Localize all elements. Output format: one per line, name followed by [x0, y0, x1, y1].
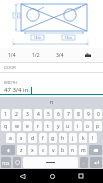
- staticText: j: [72, 135, 74, 142]
- button[interactable]: m: [79, 145, 87, 155]
- button[interactable]: d: [28, 133, 37, 143]
- button[interactable]: 9: [84, 109, 92, 119]
- staticText: u: [66, 123, 70, 130]
- staticText: DOOR: [4, 65, 16, 70]
- button[interactable]: n: [69, 145, 77, 155]
- button[interactable]: g: [49, 133, 57, 143]
- button[interactable]: 3/4: [48, 48, 72, 62]
- staticText: ?123: [2, 161, 10, 165]
- button[interactable]: backspace: [89, 145, 102, 155]
- staticText: 18 in.: [65, 36, 73, 40]
- button[interactable]: b: [59, 145, 67, 155]
- button[interactable]: q: [1, 121, 10, 131]
- button[interactable]: k: [79, 133, 87, 143]
- staticText: 1/4: [8, 52, 16, 59]
- button[interactable]: 1: [1, 109, 10, 119]
- button[interactable]: .: [80, 157, 88, 168]
- staticText: 4: [37, 111, 40, 118]
- button[interactable]: emoji: [13, 157, 21, 168]
- staticText: .: [83, 159, 85, 166]
- staticText: 0: [97, 111, 100, 118]
- button[interactable]: Space: [23, 157, 78, 168]
- staticText: 47 3/4 in.: [4, 86, 30, 94]
- button[interactable]: Units: [72, 48, 103, 62]
- button[interactable]: Home: [44, 169, 60, 183]
- staticText: b: [61, 147, 65, 154]
- staticText: 7: [67, 111, 70, 118]
- staticText: 8: [77, 111, 80, 118]
- staticText: f: [42, 135, 44, 142]
- button[interactable]: 8: [74, 109, 82, 119]
- button[interactable]: i: [74, 121, 82, 131]
- button[interactable]: ?123: [1, 157, 11, 168]
- staticText: n: [50, 99, 54, 106]
- staticText: g: [51, 135, 55, 142]
- staticText: 1/2: [32, 52, 40, 59]
- staticText: 18 in.: [34, 36, 42, 40]
- button[interactable]: 2: [12, 109, 21, 119]
- button[interactable]: y: [54, 121, 62, 131]
- staticText: r: [37, 123, 40, 130]
- staticText: WIDTH: [4, 80, 18, 85]
- button[interactable]: 0: [94, 109, 102, 119]
- button[interactable]: c: [39, 145, 47, 155]
- button[interactable]: 4: [34, 109, 42, 119]
- button[interactable]: 6: [54, 109, 62, 119]
- button[interactable]: 7: [64, 109, 72, 119]
- staticText: l: [92, 135, 94, 142]
- staticText: d: [31, 135, 35, 142]
- staticText: 12: [15, 14, 19, 18]
- button[interactable]: v: [49, 145, 57, 155]
- button[interactable]: Recents: [73, 169, 89, 183]
- staticText: 3: [26, 111, 29, 118]
- button[interactable]: f: [39, 133, 47, 143]
- button[interactable]: p: [94, 121, 102, 131]
- button[interactable]: r: [34, 121, 42, 131]
- staticText: 1: [4, 111, 7, 118]
- staticText: a: [9, 135, 12, 142]
- button[interactable]: e: [23, 121, 32, 131]
- button[interactable]: s: [17, 133, 26, 143]
- button[interactable]: x: [28, 145, 37, 155]
- staticText: q: [4, 123, 8, 130]
- button[interactable]: o: [84, 121, 92, 131]
- staticText: h: [61, 135, 65, 142]
- staticText: t: [47, 123, 49, 130]
- staticText: o: [86, 123, 90, 130]
- button[interactable]: w: [12, 121, 21, 131]
- button[interactable]: Back: [14, 169, 30, 183]
- staticText: y: [57, 123, 60, 130]
- staticText: n: [71, 147, 75, 154]
- staticText: e: [26, 123, 29, 130]
- button[interactable]: enter: [90, 157, 102, 168]
- staticText: x: [31, 147, 34, 154]
- staticText: 3/4: [56, 52, 64, 59]
- staticText: s: [20, 135, 23, 142]
- staticText: 5: [47, 111, 50, 118]
- staticText: i: [77, 123, 79, 130]
- staticText: 9: [87, 111, 90, 118]
- button[interactable]: h: [59, 133, 67, 143]
- button[interactable]: 1/2: [24, 48, 48, 62]
- staticText: z: [20, 147, 23, 154]
- button[interactable]: u: [64, 121, 72, 131]
- staticText: p: [96, 123, 100, 130]
- button[interactable]: 3: [23, 109, 32, 119]
- staticText: c: [42, 147, 45, 154]
- button[interactable]: 5: [44, 109, 52, 119]
- button[interactable]: shift: [1, 145, 15, 155]
- staticText: 2: [15, 111, 18, 118]
- button[interactable]: 1/4: [0, 48, 24, 62]
- button[interactable]: t: [44, 121, 52, 131]
- button[interactable]: z: [17, 145, 26, 155]
- staticText: k: [82, 135, 85, 142]
- staticText: 6: [57, 111, 60, 118]
- button[interactable]: j: [69, 133, 77, 143]
- staticText: w: [15, 123, 19, 130]
- staticText: v: [52, 147, 55, 154]
- button[interactable]: a: [6, 133, 15, 143]
- staticText: m: [81, 147, 86, 154]
- button[interactable]: l: [89, 133, 97, 143]
